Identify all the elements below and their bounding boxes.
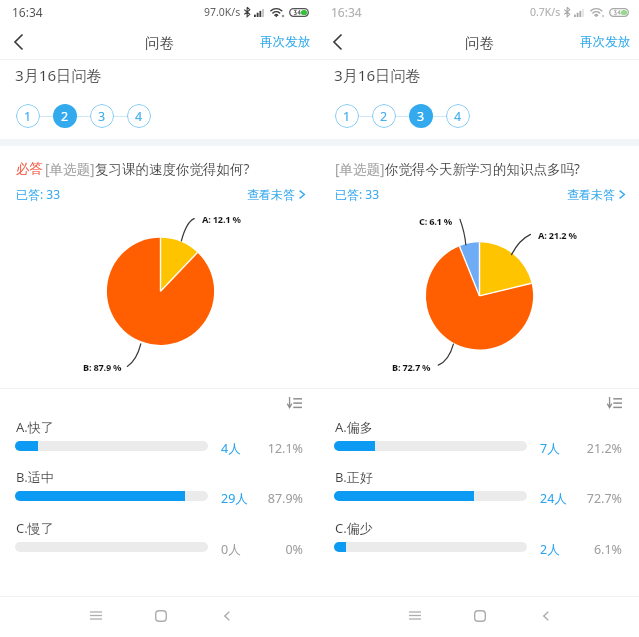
staticText: 3 [417, 108, 425, 125]
staticText: 4人 [221, 440, 241, 457]
staticText: 2人 [540, 541, 560, 558]
staticText: 87.9% [257, 490, 303, 507]
staticText: 12.1% [257, 440, 303, 457]
staticText: A: 12.1 % [202, 213, 241, 226]
staticText: 0% [257, 541, 303, 558]
staticText: A: 21.2 % [538, 229, 577, 242]
staticText: 4 [135, 108, 143, 125]
button[interactable]: Recents [78, 599, 113, 631]
staticText: 问卷 [145, 34, 174, 52]
button[interactable]: 3 [90, 104, 114, 128]
button[interactable]: Sort [603, 391, 625, 413]
staticText: 已答: 33 [16, 186, 61, 202]
button[interactable]: 2 [372, 104, 396, 128]
button[interactable]: B.适中 [0, 462, 319, 507]
staticText: 21.2% [576, 440, 622, 457]
button[interactable]: Back [528, 600, 563, 632]
staticText: 97.0K/s [204, 5, 241, 19]
button[interactable]: 2 [53, 104, 77, 128]
staticText: 再次发放 [260, 34, 311, 50]
staticText: 24人 [540, 490, 567, 507]
staticText: 2 [61, 108, 69, 125]
staticText: 6.1% [576, 541, 622, 558]
staticText: 3月16日问卷 [15, 65, 102, 86]
staticText: 4 [454, 108, 462, 125]
button[interactable]: 4 [446, 104, 470, 128]
button[interactable]: A.偏多 [319, 412, 639, 457]
staticText: 已答: 33 [335, 186, 380, 202]
button[interactable]: C.慢了 [0, 513, 319, 558]
staticText: 2 [380, 108, 388, 125]
button[interactable]: 3 [409, 104, 433, 128]
staticText: 查看未答 [247, 187, 295, 202]
button[interactable]: Home [143, 600, 178, 632]
staticText: 3月16日问卷 [334, 65, 421, 86]
button[interactable]: 查看未答 [239, 183, 319, 206]
button[interactable]: 1 [335, 104, 359, 128]
button[interactable]: 查看未答 [559, 183, 639, 206]
staticText: 3 [98, 108, 106, 125]
button[interactable]: 再次发放 [572, 30, 639, 54]
staticText: A.快了 [16, 418, 54, 436]
staticText: 0.7K/s [530, 5, 561, 19]
staticText: 复习课的速度你觉得如何? [95, 160, 250, 178]
button[interactable]: 再次发放 [252, 30, 319, 54]
staticText: 29人 [221, 490, 248, 507]
staticText: 7人 [540, 440, 560, 457]
button[interactable]: Back [2, 28, 34, 56]
staticText: 必答 [16, 160, 43, 177]
staticText: C.偏少 [335, 519, 373, 537]
staticText: 16:34 [331, 4, 362, 20]
staticText: 问卷 [465, 34, 494, 52]
staticText: 1 [24, 108, 32, 125]
staticText: 16:34 [12, 4, 43, 20]
button[interactable]: A.快了 [0, 412, 319, 457]
button[interactable]: Recents [397, 599, 432, 631]
button[interactable]: 1 [16, 104, 40, 128]
staticText: C.慢了 [16, 519, 54, 537]
staticText: [单选题] [335, 160, 385, 178]
staticText: 0人 [221, 541, 241, 558]
staticText: B.适中 [16, 468, 54, 486]
button[interactable]: Back [321, 28, 353, 56]
staticText: B: 87.9 % [83, 361, 122, 374]
staticText: [单选题] [45, 160, 95, 178]
button[interactable]: Back [209, 600, 244, 632]
button[interactable]: Sort [283, 391, 305, 413]
staticText: B.正好 [335, 468, 373, 486]
staticText: 查看未答 [567, 187, 615, 202]
staticText: B: 72.7 % [392, 361, 431, 374]
staticText: C: 6.1 % [419, 215, 453, 228]
staticText: A.偏多 [335, 418, 373, 436]
button[interactable]: B.正好 [319, 462, 639, 507]
button[interactable]: 4 [127, 104, 151, 128]
staticText: 再次发放 [580, 34, 631, 50]
staticText: 1 [343, 108, 351, 125]
button[interactable]: C.偏少 [319, 513, 639, 558]
button[interactable]: Home [462, 600, 497, 632]
staticText: 你觉得今天新学习的知识点多吗? [385, 160, 580, 178]
staticText: 72.7% [576, 490, 622, 507]
